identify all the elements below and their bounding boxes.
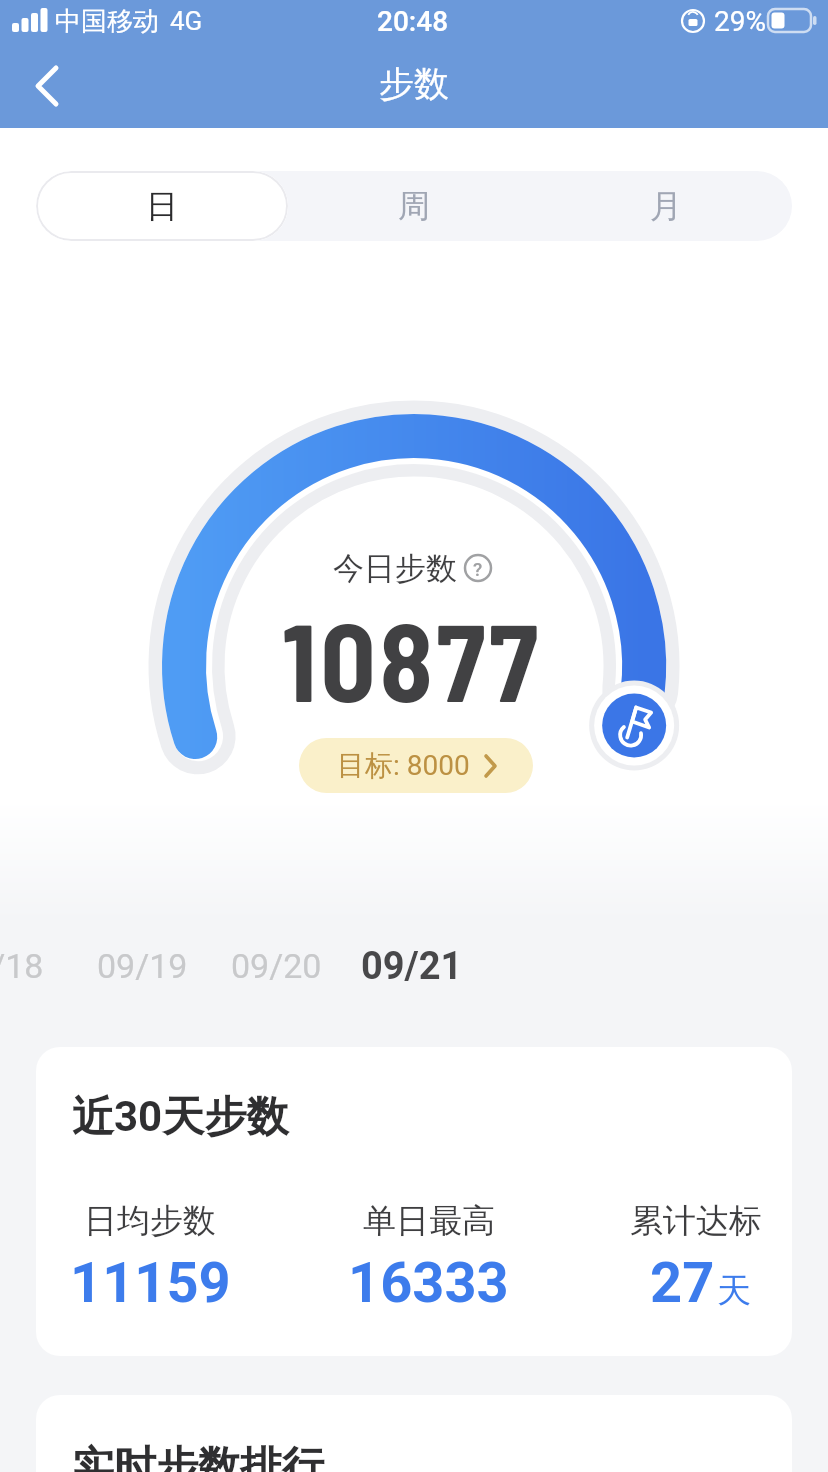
button[interactable] [36, 1395, 792, 1472]
staticText: 日 [146, 186, 178, 226]
staticText: 中国移动 [55, 5, 159, 38]
staticText: 09/20 [231, 946, 322, 986]
staticText: 日均步数 [84, 1200, 216, 1242]
staticText: 10877 [282, 594, 542, 724]
staticText: 目标: 8000 [337, 748, 470, 783]
staticText: 4G [170, 6, 203, 36]
staticText: 09/19 [97, 946, 188, 986]
staticText: 16333 [348, 1250, 509, 1316]
staticText: 月 [650, 186, 682, 226]
button[interactable]: 周 [288, 171, 540, 241]
staticText: 周 [398, 186, 430, 226]
button[interactable]: 月 [540, 171, 792, 241]
staticText: 20:48 [377, 5, 449, 38]
staticText: 今日步数 [333, 549, 457, 588]
staticText: 27 [650, 1250, 715, 1316]
button[interactable]: 日 [36, 171, 288, 241]
staticText: 近30天步数 [72, 1091, 289, 1144]
staticText: 09/21 [361, 944, 463, 989]
staticText: 天 [717, 1269, 751, 1312]
staticText: 单日最高 [363, 1200, 495, 1242]
staticText: 29% [714, 5, 766, 38]
staticText: 11159 [70, 1250, 231, 1316]
staticText: 实时步数排行 [72, 1441, 324, 1472]
staticText: 步数 [379, 62, 449, 106]
staticText: 累计达标 [630, 1200, 762, 1242]
staticText: 09/18 [0, 946, 44, 986]
staticText: ? [473, 558, 483, 580]
button[interactable]: 目标: 8000 [299, 738, 533, 793]
button[interactable] [16, 62, 76, 112]
button[interactable] [36, 1047, 792, 1356]
